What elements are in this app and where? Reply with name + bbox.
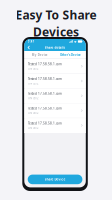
staticText: ON 03:12: [28, 111, 38, 115]
button[interactable]: Tested 17.58.58.1.com: [24, 89, 86, 103]
staticText: 9:41: [28, 40, 35, 43]
button[interactable]: Share Device: [28, 175, 82, 184]
staticText: Tested 17.58.58.1.com: [28, 62, 62, 66]
staticText: Tested 17.58.58.1.com: [28, 121, 62, 125]
staticText: Tested 17.58.58.1.com: [28, 91, 62, 96]
button[interactable]: My Device: [24, 51, 55, 59]
button[interactable]: Tested 17.58.58.1.com: [24, 74, 86, 89]
staticText: ON 03:12: [28, 67, 38, 70]
button[interactable]: Back: [26, 45, 32, 50]
staticText: Other's Device: [60, 53, 81, 57]
staticText: ON 03:12: [28, 82, 38, 85]
staticText: Share details: [44, 45, 65, 50]
staticText: Easy To Share: [15, 7, 96, 23]
staticText: Tested 17.58.58.1.com: [28, 77, 62, 81]
staticText: Devices: [33, 24, 79, 40]
button[interactable]: Tested 17.58.58.1.com: [24, 103, 86, 118]
staticText: ON 03:12: [28, 97, 38, 100]
staticText: My Device: [32, 53, 48, 57]
staticText: ON 03:12: [28, 126, 38, 130]
staticText: Share Device: [44, 177, 65, 181]
button[interactable]: Tested 17.58.58.1.com: [24, 118, 86, 133]
button[interactable]: Other's Device: [55, 51, 86, 59]
button[interactable]: Tested 17.58.58.1.com: [24, 59, 86, 74]
staticText: Tested 17.58.58.1.com: [28, 106, 62, 110]
